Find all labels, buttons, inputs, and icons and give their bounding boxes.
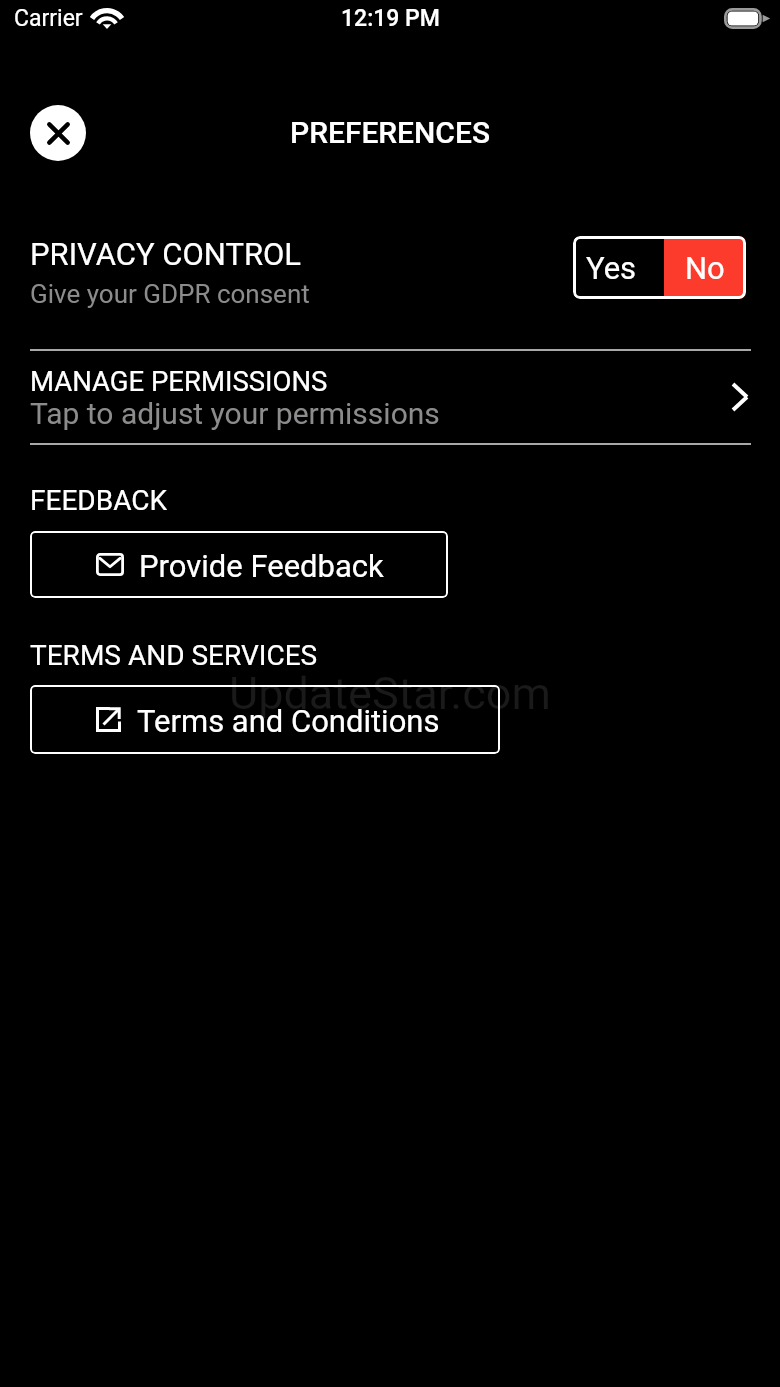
button[interactable]: Terms and Conditions [30, 685, 500, 754]
staticText: TERMS AND SERVICES [30, 639, 318, 672]
button[interactable]: Provide Feedback [30, 531, 448, 598]
staticText: UpdateStar.com [229, 667, 551, 720]
staticText: PREFERENCES [290, 115, 491, 150]
staticText: Provide Feedback [139, 548, 384, 584]
staticText: Terms and Conditions [137, 703, 440, 739]
staticText: Yes [586, 250, 637, 286]
staticText: 12:19 PM [341, 5, 440, 32]
staticText: No [685, 250, 725, 286]
other: Open permissions [733, 384, 747, 410]
staticText: PRIVACY CONTROL [30, 236, 302, 272]
button[interactable]: No [664, 236, 746, 299]
staticText: MANAGE PERMISSIONS [30, 365, 328, 397]
button[interactable]: Close [30, 105, 86, 161]
button[interactable]: Yes [573, 236, 664, 299]
staticText: Tap to adjust your permissions [30, 396, 440, 431]
staticText: Give your GDPR consent [30, 279, 310, 309]
staticText: FEEDBACK [30, 484, 168, 517]
button[interactable]: MANAGE PERMISSIONS [0, 351, 780, 443]
staticText: Carrier [14, 5, 83, 32]
